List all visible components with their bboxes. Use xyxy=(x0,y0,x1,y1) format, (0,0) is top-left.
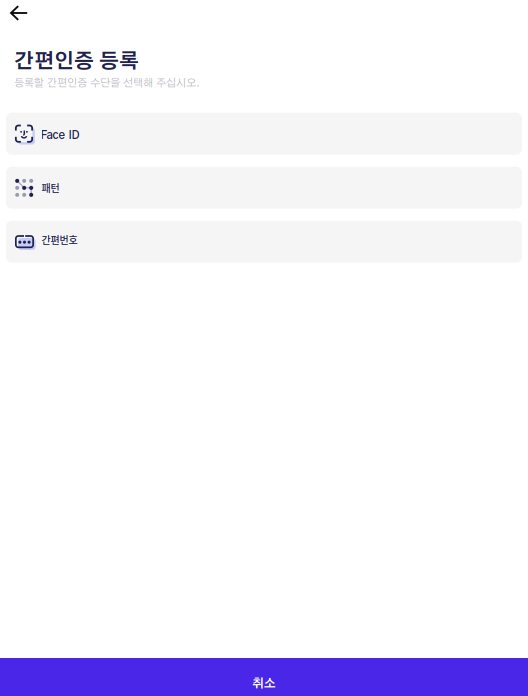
button[interactable]: Back xyxy=(1,1,37,27)
staticText: 간편번호 xyxy=(41,232,77,247)
button[interactable]: 패턴 xyxy=(6,167,522,209)
staticText: Face ID xyxy=(40,130,79,141)
button[interactable]: 간편번호 xyxy=(6,221,522,263)
button[interactable]: Face ID xyxy=(6,113,522,155)
staticText: 패턴 xyxy=(41,180,59,195)
staticText: 간편인증 등록 xyxy=(14,52,139,72)
staticText: 등록할 간편인증 수단을 선택해 주십시오. xyxy=(14,78,200,89)
button[interactable]: 취소 xyxy=(0,658,528,696)
staticText: 취소 xyxy=(252,678,276,690)
